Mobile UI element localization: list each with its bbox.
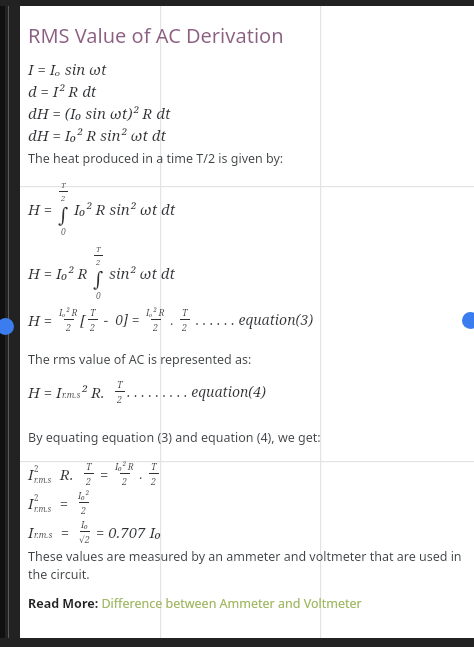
staticText: The rms value of AC is represented as: xyxy=(28,351,252,368)
staticText: T xyxy=(182,306,188,318)
staticText: I xyxy=(28,522,34,542)
staticText: Read More: Difference between Ammeter an… xyxy=(28,595,362,612)
staticText: Iₒ² R xyxy=(146,306,165,318)
staticText: T xyxy=(86,460,92,472)
staticText: r.m.s xyxy=(34,503,52,514)
staticText: H = I₀² R xyxy=(28,263,92,283)
staticText: sin² ωt dt xyxy=(109,263,176,283)
staticText: 2 xyxy=(96,257,101,267)
staticText: R. xyxy=(52,464,82,484)
staticText: 2 xyxy=(122,475,128,487)
staticText: . xyxy=(136,465,147,483)
staticText: dH = I₀² R sin² ωt dt xyxy=(28,125,167,145)
button[interactable]: RMS Value of AC Derivation xyxy=(28,22,284,49)
staticText: dH = (I₀ sin ωt)² R dt xyxy=(28,103,171,123)
staticText: By equating equation (3) and equation (4… xyxy=(28,429,321,446)
staticText: r.m.s xyxy=(62,389,81,401)
staticText: 2 xyxy=(66,321,72,333)
button[interactable]: Selection end handle xyxy=(462,312,474,329)
staticText: 0 xyxy=(61,226,66,238)
staticText: . . . . . . . . . equation(4) xyxy=(127,382,266,401)
staticText: T xyxy=(96,244,101,254)
staticText: √2 xyxy=(79,533,90,545)
staticText: The heat produced in a time T/2 is given… xyxy=(28,150,284,167)
staticText: I₀ xyxy=(81,518,88,530)
staticText: 2 xyxy=(117,393,123,405)
button[interactable]: Selection start handle xyxy=(0,318,14,335)
staticText: d = I² R dt xyxy=(28,81,97,101)
staticText: 2 xyxy=(86,475,92,487)
staticText: 2 xyxy=(151,475,157,487)
staticText: I₀² xyxy=(78,489,89,501)
staticText: These values are measured by an ammeter … xyxy=(28,548,466,583)
staticText: = xyxy=(96,464,113,484)
staticText: 2 xyxy=(153,321,159,333)
staticText: = xyxy=(53,522,77,542)
staticText: 2 xyxy=(81,504,87,516)
staticText: r.m.s xyxy=(34,474,52,485)
staticText: 2 xyxy=(182,321,188,333)
staticText: ∫ xyxy=(93,267,104,290)
staticText: Iₒ² R xyxy=(59,306,78,318)
staticText: H = xyxy=(28,199,57,219)
button[interactable]: Read More: Difference between Ammeter an… xyxy=(28,595,466,612)
staticText: 2 xyxy=(34,492,39,503)
staticText: H = I xyxy=(28,382,62,402)
staticText: . xyxy=(167,311,178,329)
staticText: T xyxy=(61,180,66,190)
staticText: = xyxy=(52,493,76,513)
staticText: H = xyxy=(28,310,57,330)
staticText: T xyxy=(151,460,157,472)
staticText: I xyxy=(28,464,34,484)
staticText: T xyxy=(90,306,96,318)
staticText: . . . . . . equation(3) xyxy=(192,310,314,329)
staticText: I = Iₒ sin ωt xyxy=(28,59,107,79)
staticText: [ xyxy=(80,310,86,330)
staticText: 2 xyxy=(34,463,39,474)
staticText: ∫ xyxy=(58,203,69,226)
staticText: 0 xyxy=(96,290,101,302)
staticText: ² R. xyxy=(81,382,113,402)
staticText: I₀² R sin² ωt dt xyxy=(74,199,176,219)
staticText: T xyxy=(117,378,123,390)
staticText: − 0] = xyxy=(100,310,144,329)
staticText: = 0.707 I₀ xyxy=(92,522,161,542)
staticText: 2 xyxy=(90,321,96,333)
staticText: I xyxy=(28,493,34,513)
staticText: 2 xyxy=(61,193,66,203)
staticText: I₀² R xyxy=(115,460,134,472)
staticText: r.m.s xyxy=(34,529,53,541)
